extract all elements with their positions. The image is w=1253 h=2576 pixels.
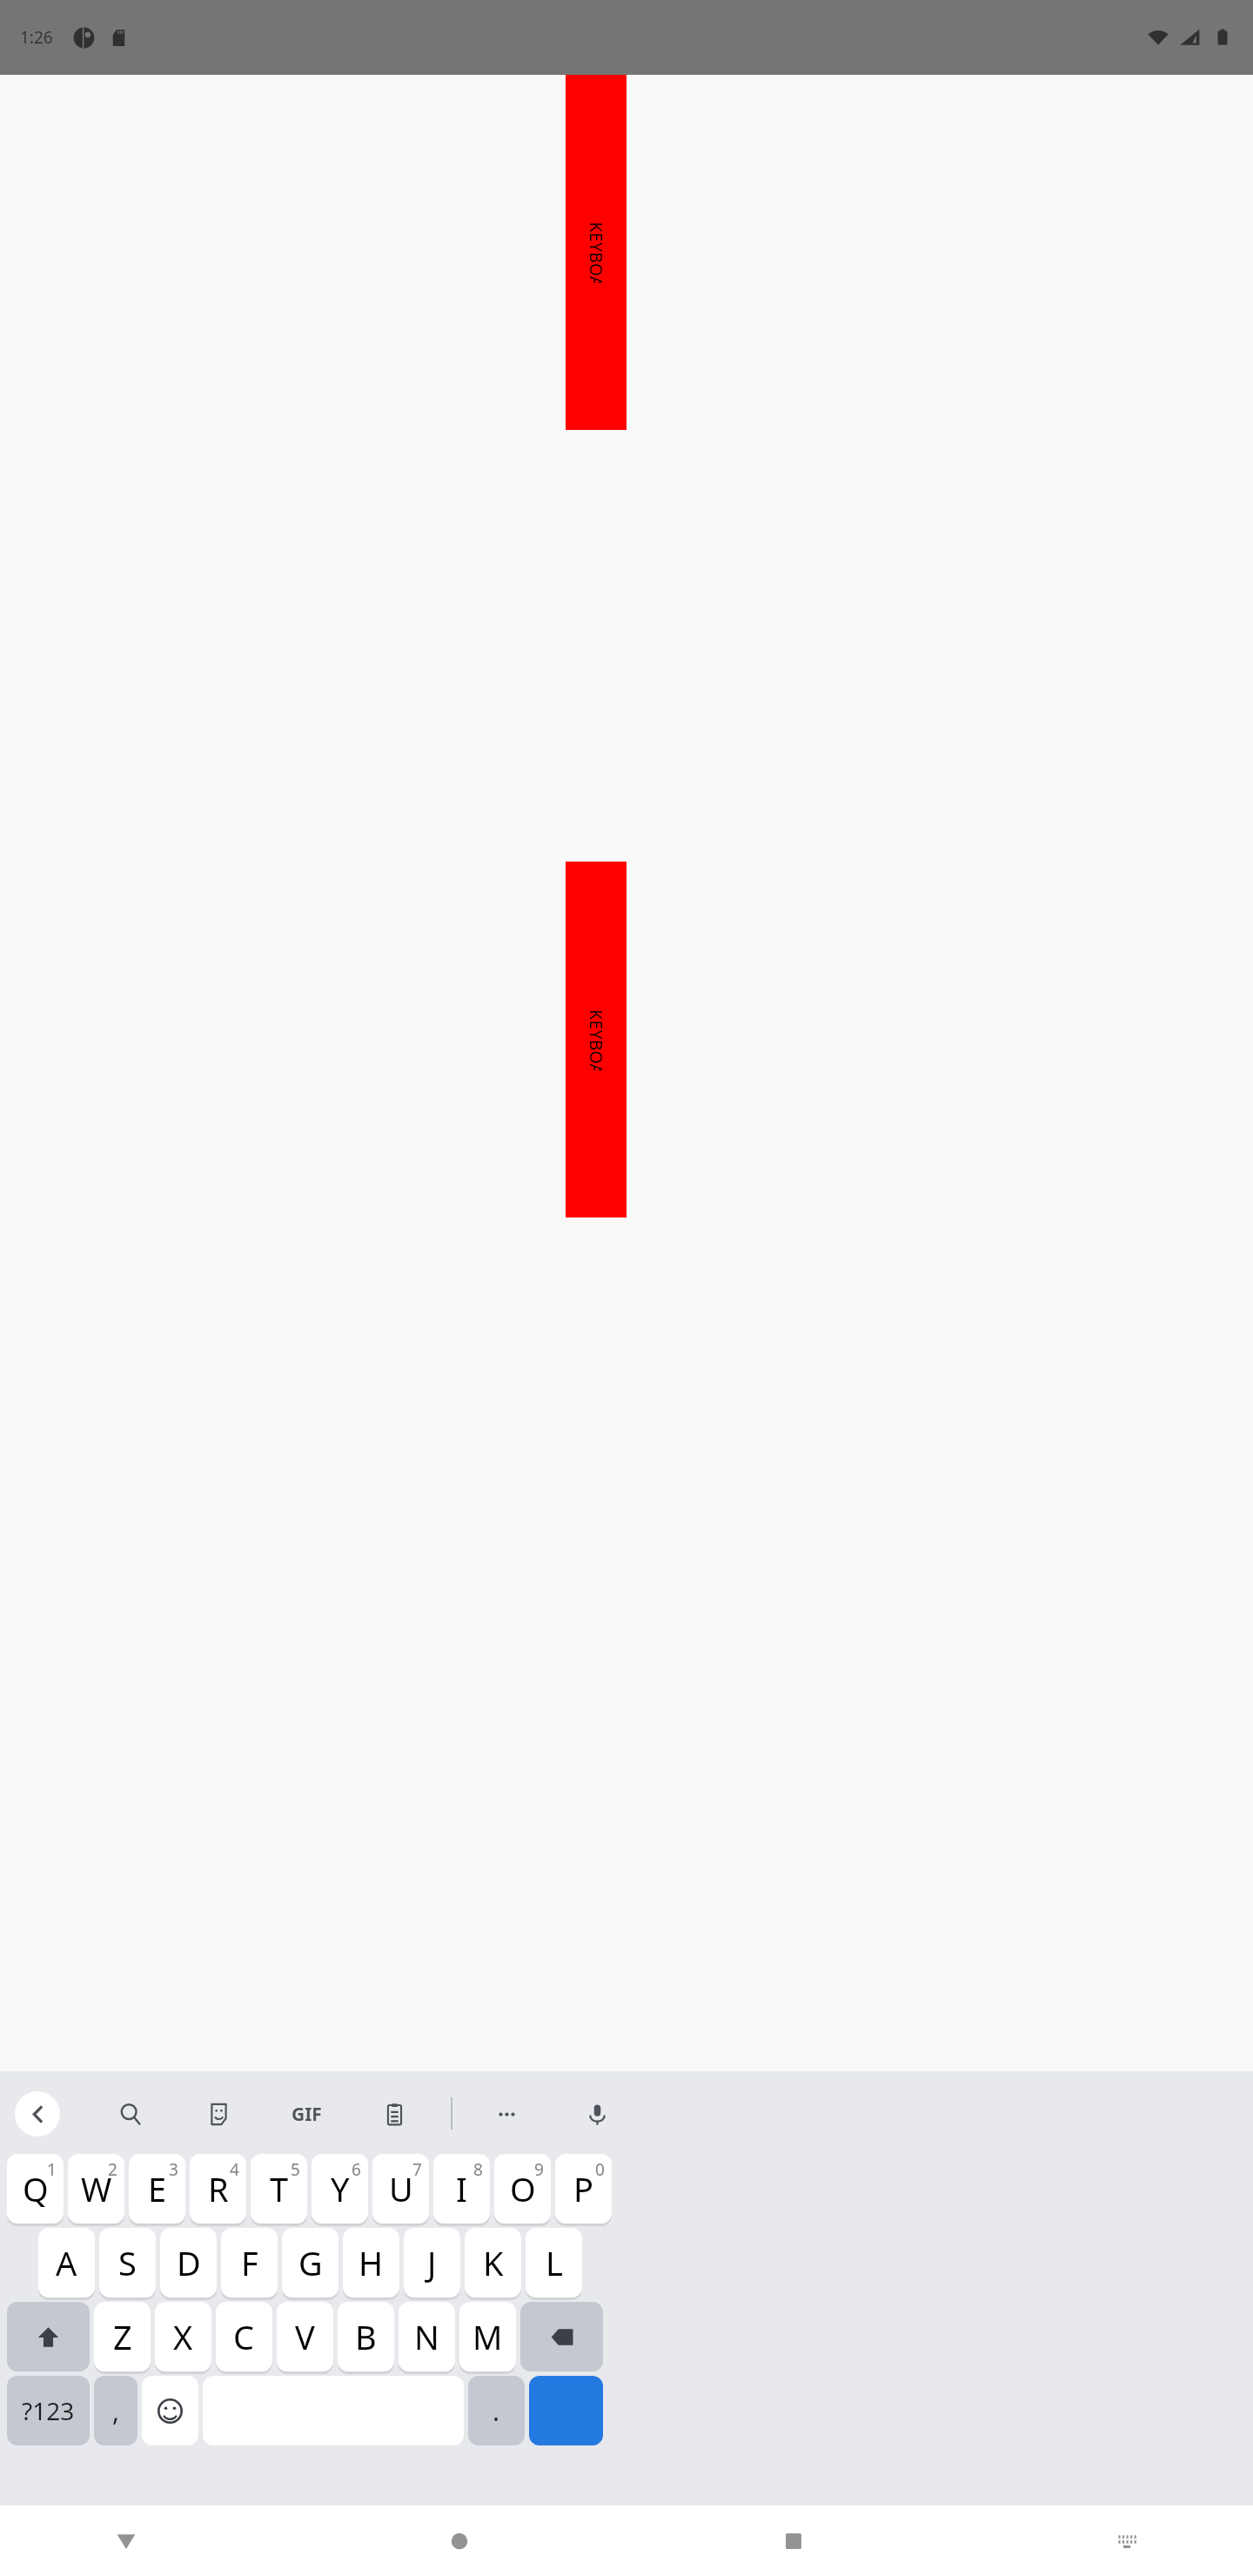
staticText: W	[81, 2166, 112, 2211]
button[interactable]: Voice input	[574, 2091, 620, 2137]
staticText: 9	[534, 2158, 544, 2181]
staticText: KEYBOARD HEIGHT: 233	[585, 1010, 607, 1070]
staticText: D	[177, 2240, 201, 2285]
button[interactable]: ,	[94, 2376, 137, 2445]
staticText: R	[208, 2166, 229, 2211]
button[interactable]: N	[399, 2302, 455, 2371]
staticText: X	[173, 2314, 193, 2359]
staticText: I	[456, 2166, 467, 2211]
button[interactable]: U	[372, 2154, 429, 2224]
button[interactable]: More options	[484, 2091, 529, 2137]
button[interactable]: P	[555, 2154, 612, 2224]
button[interactable]: Emoji	[142, 2376, 198, 2445]
staticText: P	[573, 2166, 593, 2211]
staticText: H	[358, 2240, 384, 2285]
button[interactable]: GIF	[284, 2091, 329, 2137]
button[interactable]: K	[465, 2228, 521, 2298]
staticText: T	[270, 2166, 289, 2211]
button[interactable]: S	[99, 2228, 156, 2298]
button[interactable]: Hide keyboard	[100, 2515, 152, 2567]
staticText: N	[414, 2314, 439, 2359]
staticText: A	[56, 2240, 77, 2285]
button[interactable]: Home	[433, 2515, 486, 2567]
staticText: Z	[113, 2314, 132, 2359]
button[interactable]: T	[251, 2154, 307, 2224]
button[interactable]: Recents	[767, 2515, 820, 2567]
button[interactable]: .	[468, 2376, 525, 2445]
button[interactable]: Enter	[529, 2376, 603, 2445]
staticText: O	[510, 2166, 536, 2211]
staticText: G	[298, 2240, 323, 2285]
button[interactable]: L	[526, 2228, 582, 2298]
staticText: S	[118, 2240, 137, 2285]
button[interactable]: F	[221, 2228, 278, 2298]
button[interactable]: Z	[94, 2302, 151, 2371]
staticText: E	[148, 2166, 167, 2211]
staticText: 6	[352, 2158, 361, 2181]
staticText: U	[389, 2166, 413, 2211]
button[interactable]: A	[38, 2228, 95, 2298]
button[interactable]: W	[68, 2154, 124, 2224]
button[interactable]: B	[338, 2302, 394, 2371]
staticText: V	[295, 2314, 315, 2359]
staticText: .	[492, 2393, 500, 2429]
button[interactable]: Search	[108, 2091, 153, 2137]
button[interactable]: Q	[7, 2154, 64, 2224]
staticText: M	[472, 2314, 503, 2359]
staticText: B	[355, 2314, 377, 2359]
button[interactable]: M	[459, 2302, 516, 2371]
staticText: Y	[331, 2166, 350, 2211]
button[interactable]: Stickers	[196, 2091, 241, 2137]
button[interactable]: G	[282, 2228, 338, 2298]
staticText: K	[483, 2240, 504, 2285]
button[interactable]: E	[129, 2154, 185, 2224]
staticText: F	[241, 2240, 258, 2285]
button[interactable]: D	[160, 2228, 217, 2298]
staticText: 1	[47, 2158, 57, 2181]
staticText: ?123	[22, 2394, 75, 2427]
staticText: 7	[412, 2158, 422, 2181]
staticText: 3	[169, 2158, 178, 2181]
button[interactable]: J	[404, 2228, 460, 2298]
button[interactable]: Backspace	[520, 2302, 603, 2371]
button[interactable]: Switch keyboard	[1101, 2515, 1153, 2567]
staticText: KEYBOARD HEIGHT: 233	[585, 222, 607, 283]
staticText: J	[427, 2240, 437, 2285]
staticText: C	[233, 2314, 255, 2359]
staticText: 5	[291, 2158, 300, 2181]
button[interactable]: H	[343, 2228, 399, 2298]
button[interactable]: V	[277, 2302, 333, 2371]
staticText: GIF	[291, 2102, 322, 2127]
button[interactable]: X	[155, 2302, 211, 2371]
button[interactable]: Back	[15, 2091, 60, 2137]
staticText: Q	[23, 2166, 49, 2211]
button[interactable]: O	[494, 2154, 551, 2224]
staticText: 0	[595, 2158, 605, 2181]
staticText: ,	[112, 2393, 120, 2429]
staticText: 4	[230, 2158, 239, 2181]
button[interactable]: Y	[312, 2154, 368, 2224]
button[interactable]: I	[433, 2154, 490, 2224]
staticText: 2	[108, 2158, 117, 2181]
button[interactable]: Clipboard	[372, 2091, 417, 2137]
staticText: 1:26	[20, 26, 53, 49]
button[interactable]: ?123	[7, 2376, 90, 2445]
staticText: L	[546, 2240, 563, 2285]
button[interactable]: C	[216, 2302, 272, 2371]
button[interactable]: R	[190, 2154, 246, 2224]
button[interactable]: Shift	[7, 2302, 90, 2371]
staticText: 8	[473, 2158, 483, 2181]
